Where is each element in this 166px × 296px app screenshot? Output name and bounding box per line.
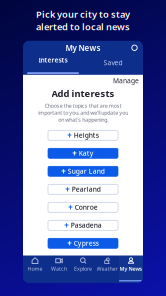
button[interactable]: My News <box>119 256 143 283</box>
staticText: Manage <box>113 76 139 85</box>
staticText: Watch <box>51 265 67 272</box>
staticText: Choose the topics that are most importan… <box>38 102 128 123</box>
staticText: + <box>67 238 72 249</box>
staticText: Pearland <box>72 185 101 194</box>
staticText: Heights <box>74 131 99 140</box>
staticText: + <box>72 148 77 159</box>
staticText: Cypress <box>74 239 99 248</box>
button[interactable]: + <box>48 238 118 248</box>
staticText: Interests <box>38 55 67 64</box>
staticText: Explore <box>74 265 92 272</box>
staticText: alerted to local news <box>36 20 130 33</box>
staticText: Pick your city to stay <box>36 8 130 20</box>
button[interactable]: Explore <box>71 256 95 283</box>
staticText: My News <box>119 265 142 272</box>
staticText: Home <box>27 265 42 272</box>
staticText: Saved <box>103 58 122 67</box>
button[interactable]: + <box>48 220 118 230</box>
button[interactable]: + <box>48 166 118 176</box>
button[interactable]: + <box>48 202 118 212</box>
button[interactable]: Settings <box>130 43 139 52</box>
staticText: + <box>65 184 70 195</box>
staticText: + <box>64 220 69 231</box>
button[interactable]: + <box>48 184 118 194</box>
staticText: My News <box>65 42 100 53</box>
button[interactable]: Saved <box>83 55 143 75</box>
staticText: + <box>61 166 66 177</box>
staticText: + <box>67 130 72 141</box>
button[interactable]: + <box>48 148 118 158</box>
staticText: Sugar Land <box>68 167 105 176</box>
staticText: Pasadena <box>71 221 102 230</box>
staticText: Katy <box>79 149 94 158</box>
button[interactable]: Weather <box>95 256 119 283</box>
button[interactable]: Watch <box>47 256 71 283</box>
staticText: + <box>68 202 73 213</box>
button[interactable]: Manage <box>113 76 139 85</box>
staticText: Conroe <box>75 203 98 212</box>
staticText: Weather <box>96 265 117 272</box>
button[interactable]: Interests <box>23 55 83 75</box>
button[interactable]: Home <box>23 256 47 283</box>
staticText: Add interests <box>51 87 114 99</box>
button[interactable]: + <box>48 130 118 140</box>
